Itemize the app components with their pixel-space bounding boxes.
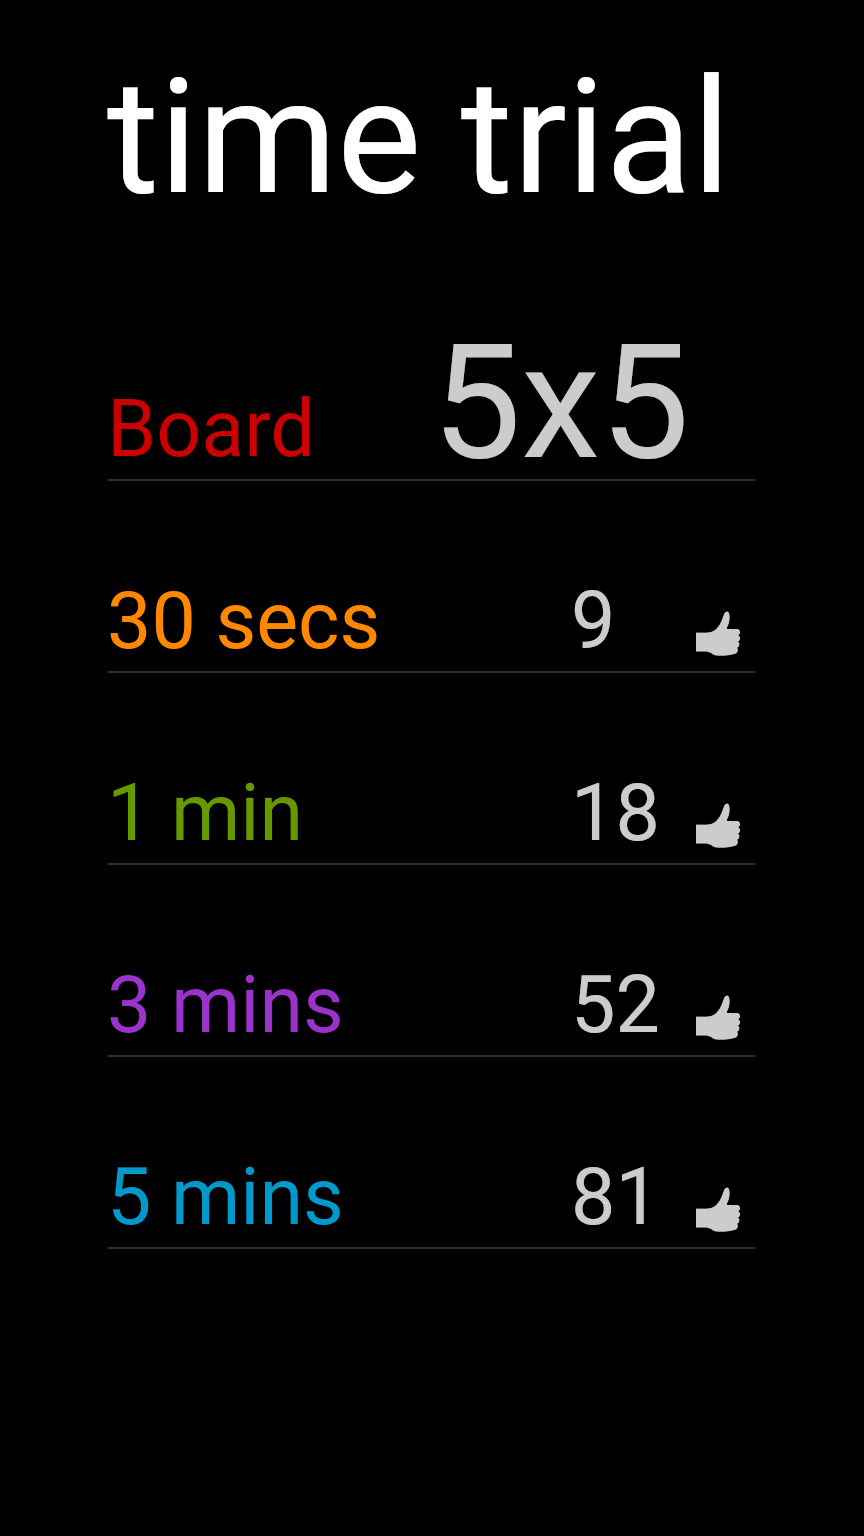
staticText: 18 xyxy=(571,767,660,860)
staticText: 9 xyxy=(571,575,616,668)
other: Personal best xyxy=(694,609,744,659)
button[interactable]: Board xyxy=(0,288,864,480)
other: Personal best xyxy=(694,801,744,851)
staticText: 30 secs xyxy=(107,575,381,668)
staticText: 1 min xyxy=(107,767,304,860)
staticText: 52 xyxy=(571,959,660,1052)
button[interactable]: 3 mins xyxy=(0,864,864,1056)
button[interactable]: 5 mins xyxy=(0,1056,864,1248)
staticText: 5x5 xyxy=(432,309,690,495)
staticText: Board xyxy=(107,383,315,476)
other: Personal best xyxy=(694,993,744,1043)
staticText: 3 mins xyxy=(107,959,344,1052)
staticText: 5 mins xyxy=(107,1151,344,1244)
staticText: time trial xyxy=(107,44,731,230)
staticText: 81 xyxy=(571,1151,660,1244)
other: Personal best xyxy=(694,1185,744,1235)
button[interactable]: 1 min xyxy=(0,672,864,864)
button[interactable]: 30 secs xyxy=(0,480,864,672)
